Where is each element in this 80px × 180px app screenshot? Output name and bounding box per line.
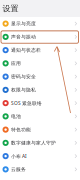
button[interactable]: 小布 AI [0,149,80,163]
staticText: 电池 [11,113,21,119]
staticText: 设置 [2,4,18,13]
button[interactable]: 云服务 [0,163,80,176]
button[interactable]: 电池 [0,110,80,123]
button[interactable]: 数字健康与家人守护 [0,136,80,149]
button[interactable]: 应用 [0,57,80,70]
button[interactable]: SOS 紧急联络 [0,96,80,110]
staticText: SOS 紧急联络 [11,100,42,106]
staticText: 密码与安全 [11,74,36,80]
staticText: 特色功能 [11,127,31,133]
staticText: 权限与隐私 [11,87,36,93]
button[interactable]: 特色功能 [0,123,80,136]
staticText: 云服务 [11,166,26,172]
staticText: 通知与状态栏 [11,47,41,53]
button[interactable]: 权限与隐私 [0,83,80,96]
staticText: 声音与振动 [11,34,36,40]
staticText: 小布 AI [11,153,27,159]
button[interactable]: 声音与振动 [0,30,80,43]
button[interactable]: 密码与安全 [0,70,80,83]
button[interactable]: 显示与亮度 [0,17,80,30]
staticText: 数字健康与家人守护 [11,140,56,146]
staticText: 显示与亮度 [11,21,36,27]
button[interactable]: 通知与状态栏 [0,43,80,57]
staticText: 应用 [11,60,21,66]
